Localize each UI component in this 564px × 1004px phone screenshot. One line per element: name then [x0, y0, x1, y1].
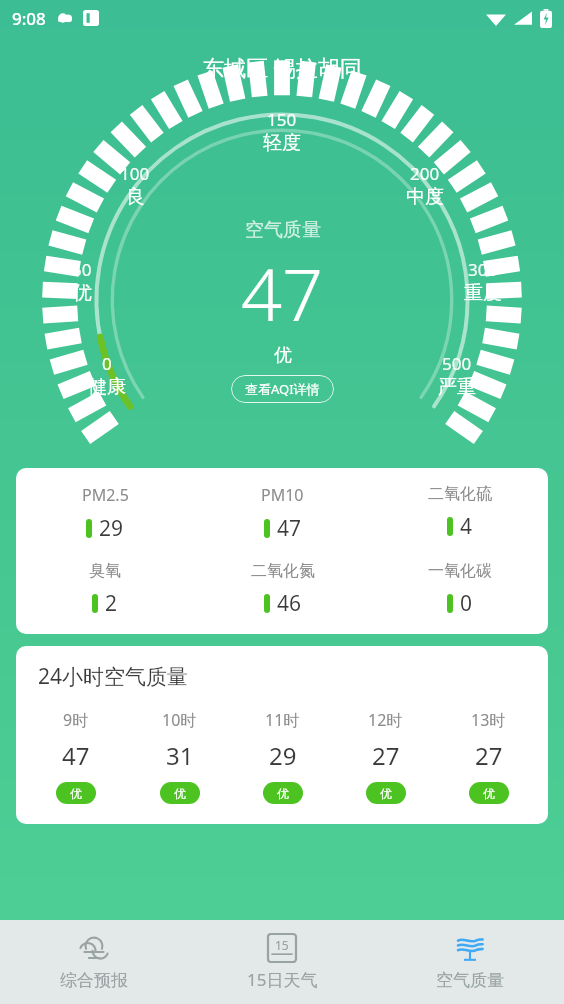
staticText: 300 — [468, 258, 498, 281]
button[interactable]: 查看AQI详情 — [231, 375, 334, 403]
staticText: 46 — [277, 589, 302, 618]
staticText: 47 — [241, 244, 324, 342]
staticText: 2 — [105, 589, 118, 618]
button[interactable]: PM2.5 — [16, 468, 548, 634]
staticText: 优 — [274, 344, 292, 367]
staticText: 东城区 锡拉胡同 — [0, 52, 564, 82]
staticText: 100 — [120, 162, 150, 185]
staticText: 空气质量 — [436, 970, 504, 991]
staticText: 优 — [380, 786, 392, 801]
staticText: 12时 — [368, 709, 403, 731]
staticText: 优 — [73, 281, 92, 305]
staticText: 15日天气 — [247, 968, 318, 991]
button[interactable]: 24小时空气质量 — [16, 646, 548, 824]
staticText: 二氧化硫 — [428, 484, 492, 504]
staticText: 47 — [277, 514, 302, 543]
staticText: 一氧化碳 — [428, 561, 492, 581]
staticText: 重度 — [464, 281, 502, 305]
staticText: 综合预报 — [60, 970, 128, 991]
staticText: 29 — [99, 514, 124, 543]
staticText: 50 — [72, 258, 92, 281]
staticText: 优 — [483, 786, 495, 801]
staticText: 31 — [166, 739, 194, 772]
staticText: 优 — [70, 786, 82, 801]
staticText: 优 — [174, 786, 186, 801]
staticText: 24小时空气质量 — [38, 662, 189, 691]
button[interactable]: 综合预报 — [0, 920, 188, 1004]
staticText: 良 — [126, 185, 145, 209]
staticText: 150 — [267, 108, 297, 131]
staticText: 200 — [410, 162, 440, 185]
staticText: 27 — [372, 739, 400, 772]
staticText: 0 — [460, 589, 473, 618]
staticText: 空气质量 — [245, 218, 321, 242]
staticText: 中度 — [406, 185, 444, 209]
staticText: 11时 — [265, 709, 300, 731]
staticText: 13时 — [471, 709, 506, 731]
staticText: 严重 — [438, 375, 476, 399]
staticText: 优 — [277, 786, 289, 801]
staticText: 10时 — [162, 709, 197, 731]
staticText: 500 — [442, 352, 472, 375]
staticText: PM2.5 — [82, 484, 129, 506]
other: 综合预报 — [79, 934, 109, 964]
staticText: PM10 — [261, 484, 304, 506]
staticText: 二氧化氮 — [251, 561, 315, 581]
staticText: 9时 — [63, 709, 89, 731]
staticText: 47 — [62, 739, 90, 772]
staticText: 4 — [460, 512, 473, 541]
button[interactable]: 15日天气 — [188, 920, 376, 1004]
staticText: 29 — [269, 739, 297, 772]
other: 空气质量 — [455, 934, 485, 964]
staticText: 27 — [475, 739, 503, 772]
staticText: 0 — [102, 352, 112, 375]
staticText: 15 — [275, 937, 289, 953]
staticText: 臭氧 — [89, 561, 121, 581]
other: 15日天气 — [268, 934, 296, 962]
staticText: 9:08 — [12, 7, 46, 30]
staticText: 轻度 — [263, 131, 301, 155]
staticText: 健康 — [88, 375, 126, 399]
button[interactable]: 空气质量 — [376, 920, 564, 1004]
staticText: 查看AQI详情 — [245, 380, 320, 398]
